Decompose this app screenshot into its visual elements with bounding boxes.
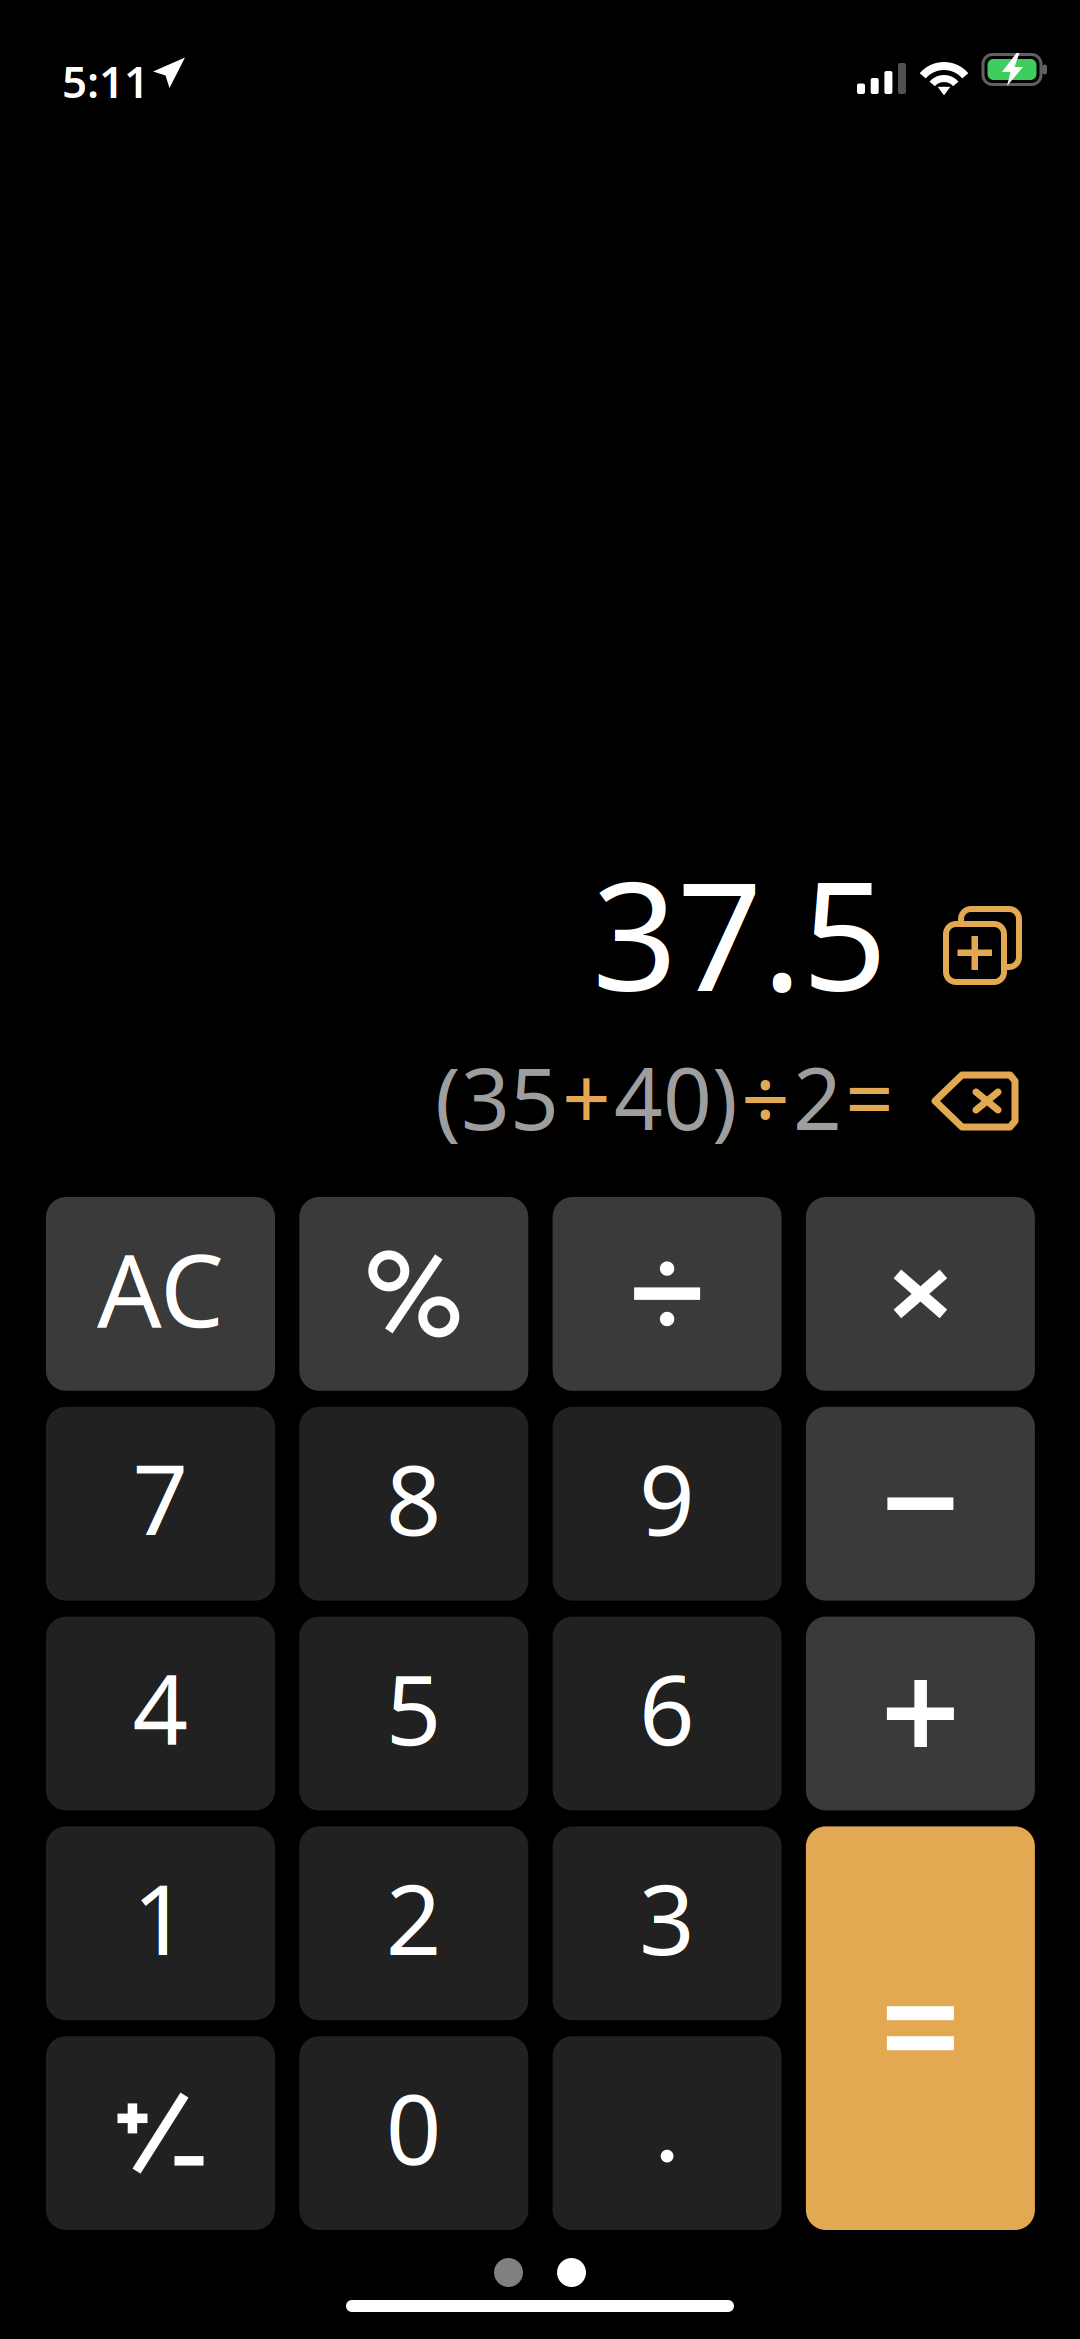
button[interactable]: 5 <box>299 1617 528 1810</box>
button[interactable]: Multiply <box>806 1197 1035 1391</box>
staticText: AC <box>97 1221 224 1355</box>
button[interactable]: Delete <box>931 1071 1019 1131</box>
staticText: 7 <box>132 1433 188 1562</box>
staticText: 2 <box>793 1040 842 1154</box>
button[interactable]: Divide <box>553 1197 782 1391</box>
staticText: 5 <box>386 1643 442 1772</box>
button[interactable]: 8 <box>299 1407 528 1601</box>
button[interactable]: Subtract <box>806 1407 1035 1601</box>
button[interactable]: Equals <box>806 1826 1035 2230</box>
button[interactable]: Page 2 <box>557 2258 586 2287</box>
staticText: (35 <box>435 1040 559 1154</box>
staticText: 5:11 <box>62 52 149 110</box>
staticText: + <box>562 1040 611 1154</box>
button[interactable]: AC <box>46 1197 275 1391</box>
button[interactable]: 7 <box>46 1407 275 1601</box>
button[interactable]: Toggle sign <box>46 2036 275 2230</box>
staticText: 3 <box>639 1853 695 1982</box>
staticText: 8 <box>386 1433 442 1562</box>
button[interactable]: 0 <box>299 2036 528 2230</box>
staticText: 2 <box>386 1853 442 1982</box>
button[interactable]: 9 <box>553 1407 782 1601</box>
button[interactable]: 4 <box>46 1617 275 1810</box>
staticText: 6 <box>639 1643 695 1772</box>
button[interactable]: 6 <box>553 1617 782 1810</box>
staticText: 4 <box>132 1643 188 1772</box>
button[interactable]: Percent <box>299 1197 528 1391</box>
button[interactable]: Decimal point <box>553 2036 782 2230</box>
button[interactable]: Add to list <box>946 909 1019 982</box>
button[interactable]: 1 <box>46 1826 275 2020</box>
staticText: 37.5 <box>592 834 887 1032</box>
staticText: 1 <box>132 1853 188 1982</box>
staticText: 40) <box>614 1040 738 1154</box>
button[interactable]: 3 <box>553 1826 782 2020</box>
button[interactable]: 2 <box>299 1826 528 2020</box>
staticText: 0 <box>386 2062 442 2192</box>
button[interactable]: Add <box>806 1617 1035 1810</box>
staticText: ÷ <box>741 1040 790 1154</box>
staticText: = <box>845 1040 894 1154</box>
button[interactable]: Page 1 <box>494 2258 523 2287</box>
staticText: 9 <box>639 1433 695 1562</box>
